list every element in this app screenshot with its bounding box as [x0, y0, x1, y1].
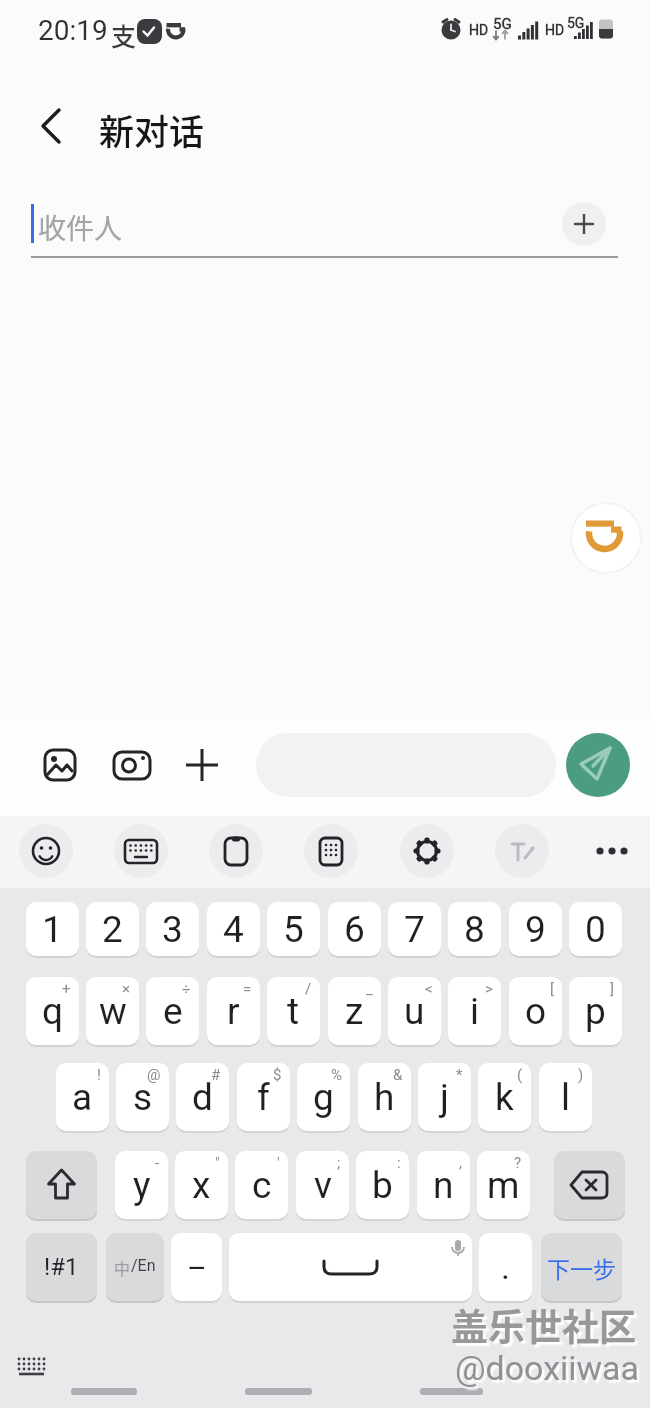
staticText: l	[561, 1076, 570, 1119]
button[interactable]	[245, 1388, 312, 1395]
button[interactable]	[184, 747, 220, 783]
staticText: h	[374, 1076, 395, 1119]
staticText: /	[305, 980, 312, 998]
staticText: w	[99, 990, 127, 1033]
button[interactable]: 下一步	[541, 1233, 622, 1301]
button[interactable]: 5	[267, 902, 320, 956]
button[interactable]: u	[388, 977, 441, 1045]
button[interactable]: g	[297, 1063, 350, 1131]
button[interactable]	[71, 1388, 137, 1395]
button[interactable]: s	[116, 1063, 169, 1131]
staticText: 7	[404, 908, 425, 951]
staticText: 3	[162, 908, 183, 951]
button[interactable]: d	[176, 1063, 229, 1131]
button[interactable]: z	[328, 977, 381, 1045]
button[interactable]: i	[448, 977, 501, 1045]
button[interactable]: t	[267, 977, 320, 1045]
button[interactable]: !#1	[26, 1233, 97, 1301]
staticText: >	[485, 980, 493, 998]
staticText: 5G	[493, 15, 512, 33]
staticText: i	[470, 990, 479, 1033]
button[interactable]	[229, 1233, 472, 1301]
button[interactable]	[114, 824, 168, 878]
staticText: @dooxiiwaa	[455, 1348, 640, 1388]
button[interactable]: 7	[388, 902, 441, 956]
staticText: j	[440, 1076, 449, 1119]
staticText: s	[133, 1076, 153, 1119]
staticText: z	[345, 990, 364, 1033]
button[interactable]: m	[477, 1151, 530, 1219]
staticText: ÷	[182, 980, 191, 998]
button[interactable]: 6	[328, 902, 381, 956]
staticText: HD	[545, 22, 565, 38]
staticText: ,	[459, 1154, 462, 1172]
button[interactable]: 8	[448, 902, 501, 956]
button[interactable]	[304, 824, 358, 878]
button[interactable]: j	[418, 1063, 471, 1131]
button[interactable]	[566, 733, 630, 797]
staticText: .	[501, 1247, 510, 1287]
button[interactable]: –	[171, 1233, 222, 1301]
staticText: (	[517, 1066, 523, 1084]
button[interactable]: o	[509, 977, 562, 1045]
button[interactable]	[209, 824, 263, 878]
staticText: '	[277, 1154, 280, 1172]
button[interactable]	[420, 1388, 483, 1395]
staticText: y	[133, 1164, 151, 1207]
button[interactable]: b	[356, 1151, 409, 1219]
staticText: g	[313, 1076, 334, 1119]
button[interactable]	[112, 749, 152, 781]
button[interactable]: 9	[509, 902, 562, 956]
button[interactable]: r	[207, 977, 260, 1045]
button[interactable]	[30, 98, 74, 154]
button[interactable]: w	[86, 977, 139, 1045]
button[interactable]	[572, 504, 640, 572]
staticText: [	[550, 980, 554, 998]
staticText: 20:19	[38, 14, 108, 47]
staticText: 5G	[567, 15, 585, 31]
button[interactable]	[495, 824, 549, 878]
staticText: $	[273, 1066, 282, 1084]
button[interactable]	[562, 202, 606, 246]
staticText: *	[456, 1066, 463, 1084]
staticText: %	[331, 1066, 342, 1084]
staticText: 收件人	[38, 207, 123, 248]
button[interactable]: c	[235, 1151, 288, 1219]
button[interactable]: 4	[207, 902, 260, 956]
staticText: #	[211, 1066, 221, 1084]
staticText: -	[155, 1154, 160, 1172]
button[interactable]: l	[539, 1063, 592, 1131]
staticText: :	[397, 1154, 401, 1172]
button[interactable]: v	[296, 1151, 349, 1219]
button[interactable]: 2	[86, 902, 139, 956]
button[interactable]: 1	[26, 902, 79, 956]
button[interactable]: k	[478, 1063, 531, 1131]
staticText: !#1	[44, 1253, 79, 1281]
staticText: ;	[337, 1154, 341, 1172]
button[interactable]: p	[569, 977, 622, 1045]
button[interactable]: a	[56, 1063, 109, 1131]
button[interactable]: e	[146, 977, 199, 1045]
button[interactable]: f	[237, 1063, 290, 1131]
button[interactable]: q	[26, 977, 79, 1045]
staticText: 中	[114, 1256, 131, 1279]
button[interactable]: h	[358, 1063, 411, 1131]
button[interactable]: 0	[569, 902, 622, 956]
button[interactable]: y	[115, 1151, 168, 1219]
button[interactable]	[42, 747, 78, 783]
button[interactable]: 3	[146, 902, 199, 956]
button[interactable]: n	[417, 1151, 470, 1219]
staticText: –	[187, 1250, 207, 1285]
staticText: 8	[464, 908, 485, 951]
button[interactable]	[19, 824, 73, 878]
button[interactable]: .	[479, 1233, 532, 1301]
button[interactable]	[26, 1151, 97, 1219]
staticText: d	[192, 1076, 213, 1119]
button[interactable]	[400, 824, 454, 878]
button[interactable]: 中	[106, 1233, 164, 1301]
button[interactable]	[585, 824, 639, 878]
button[interactable]: x	[175, 1151, 228, 1219]
button[interactable]	[554, 1151, 625, 1219]
staticText: +	[62, 980, 71, 998]
